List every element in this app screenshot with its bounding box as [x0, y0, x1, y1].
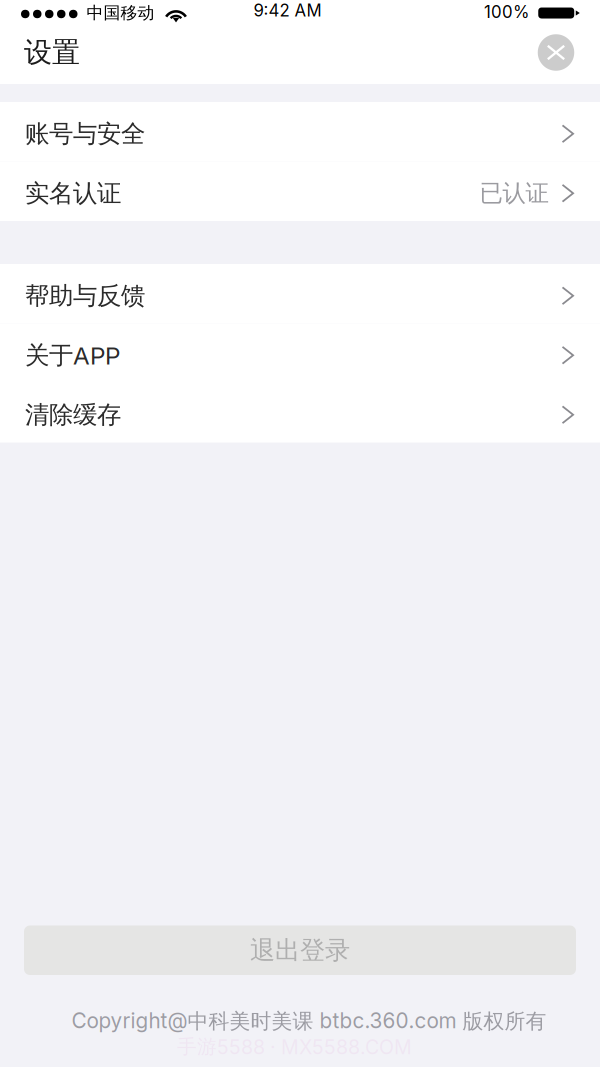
button[interactable]: Close — [534, 30, 578, 74]
button[interactable]: 实名认证 — [0, 161, 600, 221]
staticText: 手游5588 · MX5588.COM — [177, 1034, 412, 1059]
staticText: 实名认证 — [25, 178, 121, 209]
button[interactable]: 关于APP — [0, 323, 600, 383]
button[interactable]: 账号与安全 — [0, 102, 600, 161]
staticText: 清除缓存 — [25, 399, 121, 430]
staticText: 中国移动 — [86, 2, 154, 24]
staticText: 已认证 — [480, 178, 549, 208]
staticText: 退出登录 — [250, 934, 350, 966]
button[interactable]: 退出登录 — [24, 925, 576, 975]
staticText: 关于APP — [25, 340, 120, 371]
staticText: 帮助与反馈 — [25, 280, 145, 311]
button[interactable]: 清除缓存 — [0, 383, 600, 442]
staticText: 设置 — [24, 35, 80, 70]
staticText: 100% — [484, 2, 529, 22]
button[interactable]: 帮助与反馈 — [0, 264, 600, 323]
staticText: Copyright@中科美时美课 btbc.360.com 版权所有 — [71, 1008, 546, 1034]
staticText: 9:42 AM — [253, 0, 321, 21]
staticText: 账号与安全 — [25, 118, 145, 149]
